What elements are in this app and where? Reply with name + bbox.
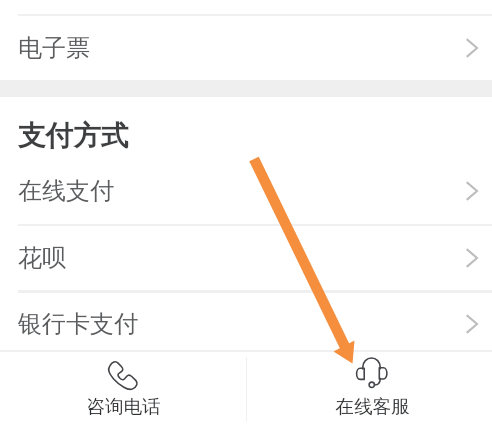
staticText: 在线客服 <box>335 395 410 418</box>
staticText: 花呗 <box>18 243 66 273</box>
staticText: 咨询电话 <box>86 395 161 418</box>
button[interactable]: 电子票 <box>0 16 492 80</box>
button[interactable]: 银行卡支付 <box>0 295 492 352</box>
button[interactable]: 在线支付 <box>0 159 492 223</box>
button[interactable]: 花呗 <box>0 226 492 290</box>
button[interactable]: Call <box>62 352 184 426</box>
staticText: 支付方式 <box>18 118 129 153</box>
button[interactable]: Online customer service <box>311 352 433 426</box>
other: Call <box>106 358 141 393</box>
staticText: 银行卡支付 <box>18 309 138 339</box>
staticText: 在线支付 <box>18 176 114 206</box>
staticText: 电子票 <box>18 33 90 63</box>
other: Online customer service <box>353 354 391 392</box>
